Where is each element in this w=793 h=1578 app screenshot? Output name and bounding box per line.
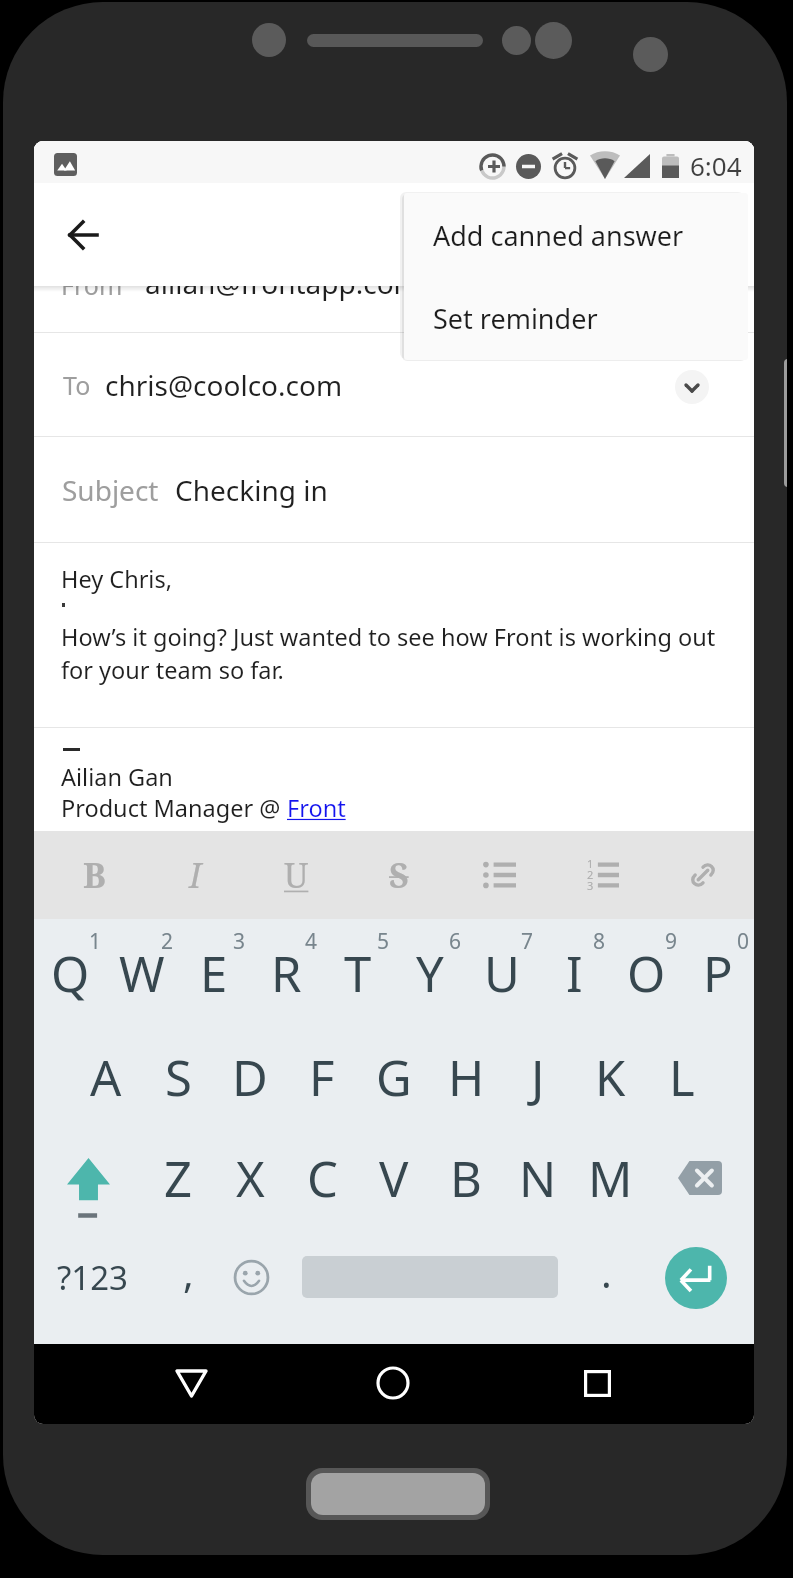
button[interactable]: S bbox=[142, 1029, 214, 1125]
button[interactable]: Numbered list bbox=[567, 831, 639, 919]
button[interactable]: L bbox=[646, 1029, 718, 1125]
button[interactable]: Bulleted list bbox=[464, 831, 536, 919]
staticText: I bbox=[566, 940, 583, 1007]
staticText: U bbox=[484, 940, 520, 1007]
staticText: 2 bbox=[161, 927, 174, 956]
staticText: B bbox=[450, 1145, 482, 1212]
button[interactable]: R bbox=[250, 922, 322, 1018]
button[interactable]: J bbox=[502, 1029, 574, 1125]
staticText: P bbox=[703, 940, 733, 1007]
staticText: , bbox=[183, 1245, 194, 1299]
button[interactable]: Italic bbox=[159, 831, 231, 919]
button[interactable]: X bbox=[214, 1130, 286, 1226]
button[interactable]: U bbox=[466, 922, 538, 1018]
button[interactable]: V bbox=[358, 1130, 430, 1226]
button[interactable]: Front bbox=[287, 792, 346, 824]
staticText: Hey Chris, bbox=[61, 563, 172, 595]
button[interactable]: Home bbox=[333, 1344, 453, 1424]
staticText: ailian@frontapp.com bbox=[145, 264, 420, 302]
button[interactable]: E bbox=[178, 922, 250, 1018]
staticText: 7 bbox=[521, 927, 534, 956]
button[interactable]: Underline bbox=[260, 831, 332, 919]
button[interactable]: A bbox=[70, 1029, 142, 1125]
button[interactable]: To bbox=[34, 333, 754, 436]
staticText: 6:04 bbox=[690, 148, 742, 183]
staticText: G bbox=[376, 1044, 412, 1111]
staticText: T bbox=[344, 940, 372, 1007]
staticText: W bbox=[119, 940, 165, 1007]
button[interactable]: Hey Chris, bbox=[34, 543, 754, 727]
staticText: 5 bbox=[377, 927, 390, 956]
staticText: To bbox=[63, 368, 91, 402]
button[interactable]: B bbox=[430, 1130, 502, 1226]
staticText: V bbox=[379, 1145, 409, 1212]
button[interactable]: Subject bbox=[34, 437, 754, 542]
button[interactable]: Home bbox=[311, 1473, 485, 1515]
staticText: Add canned answer bbox=[433, 217, 684, 254]
button[interactable]: F bbox=[286, 1029, 358, 1125]
button[interactable]: Show more recipients bbox=[675, 370, 709, 404]
button[interactable]: Q bbox=[34, 922, 106, 1018]
staticText: 3 bbox=[233, 927, 246, 956]
staticText: chris@coolco.com bbox=[105, 366, 343, 404]
button[interactable]: Enter bbox=[665, 1247, 727, 1309]
button[interactable]: W bbox=[106, 922, 178, 1018]
staticText: Z bbox=[164, 1145, 193, 1212]
button[interactable]: Strikethrough bbox=[363, 831, 435, 919]
button[interactable]: Z bbox=[142, 1130, 214, 1226]
staticText: 1 bbox=[89, 927, 102, 956]
button[interactable]: Emoji bbox=[215, 1230, 287, 1326]
button[interactable]: D bbox=[214, 1029, 286, 1125]
staticText: E bbox=[200, 940, 228, 1007]
button[interactable]: Comma bbox=[150, 1230, 222, 1326]
staticText: Ailian Gan bbox=[61, 761, 173, 793]
staticText: Q bbox=[51, 940, 90, 1007]
staticText: A bbox=[90, 1044, 122, 1111]
button[interactable]: Add canned answer bbox=[404, 193, 748, 277]
staticText: Y bbox=[416, 940, 444, 1007]
button[interactable]: Y bbox=[394, 922, 466, 1018]
staticText: 6 bbox=[449, 927, 462, 956]
staticText: M bbox=[588, 1145, 633, 1212]
button[interactable]: Space bbox=[296, 1230, 564, 1326]
staticText: 1 2 3 bbox=[587, 856, 594, 893]
button[interactable]: Bold bbox=[58, 831, 130, 919]
button[interactable]: T bbox=[322, 922, 394, 1018]
staticText: 4 bbox=[305, 927, 318, 956]
staticText: B bbox=[83, 852, 106, 898]
button[interactable]: M bbox=[574, 1130, 646, 1226]
staticText: K bbox=[595, 1044, 626, 1111]
button[interactable]: G bbox=[358, 1029, 430, 1125]
staticText: Subject bbox=[62, 471, 159, 509]
staticText: C bbox=[307, 1145, 338, 1212]
staticText: H bbox=[448, 1044, 485, 1111]
button[interactable]: Shift bbox=[34, 1130, 142, 1226]
button[interactable]: I bbox=[538, 922, 610, 1018]
staticText: S bbox=[165, 1044, 192, 1111]
button[interactable]: K bbox=[574, 1029, 646, 1125]
staticText: Product Manager @ bbox=[61, 792, 287, 824]
button[interactable]: P bbox=[682, 922, 754, 1018]
staticText: L bbox=[669, 1044, 695, 1111]
button[interactable]: O bbox=[610, 922, 682, 1018]
button[interactable]: Symbols bbox=[44, 1230, 136, 1326]
staticText: Set reminder bbox=[433, 300, 598, 337]
button[interactable]: Insert link bbox=[667, 831, 739, 919]
staticText: R bbox=[271, 940, 302, 1007]
button[interactable]: H bbox=[430, 1029, 502, 1125]
staticText: 9 bbox=[665, 927, 678, 956]
button[interactable]: Backspace bbox=[646, 1130, 754, 1226]
button[interactable]: Back bbox=[131, 1344, 251, 1424]
button[interactable]: C bbox=[286, 1130, 358, 1226]
staticText: O bbox=[627, 940, 666, 1007]
staticText: U bbox=[284, 852, 309, 898]
staticText: N bbox=[519, 1145, 557, 1212]
staticText: I bbox=[189, 852, 202, 898]
button[interactable]: Recent apps bbox=[537, 1344, 657, 1424]
staticText: D bbox=[232, 1044, 268, 1111]
button[interactable]: Set reminder bbox=[404, 277, 748, 360]
button[interactable]: Ailian Gan bbox=[34, 728, 754, 831]
button[interactable]: Period bbox=[570, 1230, 642, 1326]
button[interactable]: N bbox=[502, 1130, 574, 1226]
button[interactable]: Back bbox=[63, 215, 103, 255]
